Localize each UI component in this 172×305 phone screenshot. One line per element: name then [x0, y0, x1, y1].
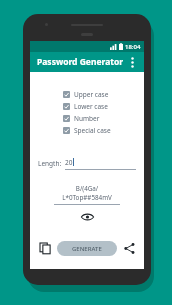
button[interactable]: Share	[120, 239, 138, 257]
button[interactable]: Toggle password visibility	[79, 209, 95, 225]
staticText: Upper case	[74, 90, 109, 99]
staticText: Special case	[74, 126, 111, 135]
staticText: 20	[65, 158, 73, 167]
staticText: B/(4Ga/L*0Top##584mV	[54, 184, 120, 202]
button[interactable]: Copy	[36, 239, 54, 257]
button[interactable]: GENERATE	[57, 241, 117, 256]
button[interactable]: Special case	[63, 124, 111, 136]
staticText: Length:	[38, 159, 62, 168]
button[interactable]: B/(4Ga/L*0Top##584mV	[54, 184, 120, 205]
button[interactable]: More options	[124, 54, 140, 70]
staticText: Lower case	[74, 102, 108, 111]
staticText: Number	[74, 114, 100, 123]
staticText: GENERATE	[72, 245, 102, 253]
button[interactable]: Lower case	[63, 100, 108, 112]
button[interactable]: 20	[65, 158, 136, 170]
staticText: Password Generator	[37, 56, 124, 68]
staticText: 18:04	[125, 43, 141, 51]
button[interactable]: Upper case	[63, 88, 109, 100]
button[interactable]: Number	[63, 112, 100, 124]
